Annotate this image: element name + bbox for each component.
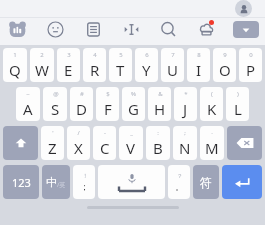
staticText: A (23, 99, 33, 119)
staticText: K (207, 99, 217, 119)
button[interactable]: 4 (83, 48, 106, 82)
button[interactable]: ？ (168, 165, 190, 199)
button[interactable]: % (122, 87, 145, 121)
staticText: V (126, 138, 136, 158)
button[interactable]: 2 (30, 48, 54, 82)
staticText: 2 (40, 51, 44, 59)
button[interactable]: ( (200, 87, 223, 121)
staticText: Z (48, 138, 57, 158)
button[interactable]: 1 (3, 48, 27, 82)
staticText: 4 (93, 51, 97, 59)
staticText: 6 (145, 51, 149, 59)
button[interactable]: 6 (135, 48, 158, 82)
staticText: ~ (26, 90, 30, 98)
staticText: $ (106, 90, 110, 98)
button[interactable]: - (93, 126, 116, 160)
staticText: 3 (67, 51, 71, 59)
button[interactable]: 9 (213, 48, 236, 82)
staticText: N (179, 138, 191, 158)
staticText: : (157, 129, 159, 137)
button[interactable]: @ (43, 87, 67, 121)
button[interactable]: Enter (222, 165, 262, 199)
staticText: O (219, 60, 231, 80)
staticText: E (64, 60, 73, 80)
staticText: G (128, 99, 139, 119)
staticText: ？ (177, 172, 183, 180)
staticText: M (205, 138, 219, 158)
staticText: % (131, 90, 136, 98)
staticText: ( (211, 90, 213, 98)
staticText: / (77, 129, 80, 137)
button[interactable]: 8 (187, 48, 210, 82)
staticText: 。 (175, 181, 184, 192)
button[interactable]: Account (235, 0, 252, 17)
button[interactable]: Skin (195, 18, 217, 40)
button[interactable]: / (67, 126, 90, 160)
staticText: /英 (57, 181, 66, 189)
staticText: W (35, 60, 49, 80)
button[interactable]: # (70, 87, 93, 121)
staticText: & (158, 90, 163, 98)
staticText: S (51, 99, 60, 119)
staticText: · (211, 129, 213, 137)
staticText: J (183, 99, 188, 119)
staticText: _ (130, 129, 133, 137)
staticText: 9 (223, 51, 227, 59)
staticText: ！ (82, 172, 88, 180)
staticText: B (153, 138, 163, 158)
button[interactable]: _ (119, 126, 143, 160)
button[interactable]: ; (173, 126, 197, 160)
staticText: Q (9, 60, 21, 80)
button[interactable]: : (146, 126, 170, 160)
button[interactable]: * (174, 87, 197, 121)
button[interactable]: 0 (239, 48, 262, 82)
staticText: 7 (171, 51, 175, 59)
button[interactable]: Backspace (227, 126, 262, 160)
button[interactable]: 7 (161, 48, 184, 82)
staticText: 1 (13, 51, 17, 59)
staticText: H (154, 99, 166, 119)
staticText: D (76, 99, 87, 119)
button[interactable]: ) (226, 87, 249, 121)
staticText: Y (142, 60, 151, 80)
button[interactable]: 中 (42, 165, 70, 199)
staticText: R (90, 60, 100, 80)
button[interactable]: 符 (193, 165, 219, 199)
button[interactable]: Shift (3, 126, 38, 160)
staticText: 中 (46, 175, 57, 189)
staticText: F (104, 99, 112, 119)
staticText: L (234, 99, 242, 119)
staticText: 8 (197, 51, 201, 59)
button[interactable]: 123 (3, 165, 39, 199)
staticText: - (104, 129, 106, 137)
staticText: 符 (200, 175, 212, 190)
button[interactable]: Baidu input logo (6, 18, 28, 40)
button[interactable]: & (148, 87, 171, 121)
staticText: 5 (119, 51, 123, 59)
button[interactable]: ~ (16, 87, 40, 121)
button[interactable]: Hide keyboard (233, 21, 259, 38)
button[interactable]: ！ (73, 165, 95, 199)
button[interactable]: 5 (109, 48, 132, 82)
staticText: I (196, 60, 202, 80)
button[interactable]: 3 (57, 48, 80, 82)
staticText: C (100, 138, 110, 158)
staticText: # (80, 90, 84, 98)
button[interactable]: Space (98, 165, 165, 199)
button[interactable]: Clipboard (82, 18, 104, 40)
button[interactable]: Emoji (44, 18, 66, 40)
button[interactable]: · (200, 126, 224, 160)
button[interactable]: ' (41, 126, 64, 160)
button[interactable]: $ (96, 87, 119, 121)
staticText: ； (80, 181, 89, 192)
staticText: U (167, 60, 178, 80)
staticText: ) (237, 90, 239, 98)
button[interactable]: Search (157, 18, 179, 40)
staticText: 0 (249, 51, 253, 59)
button[interactable]: Cursor (120, 18, 142, 40)
staticText: T (116, 60, 125, 80)
staticText: ' (52, 129, 54, 137)
staticText: 123 (12, 175, 31, 190)
staticText: @ (53, 90, 59, 98)
staticText: ; (184, 129, 186, 137)
